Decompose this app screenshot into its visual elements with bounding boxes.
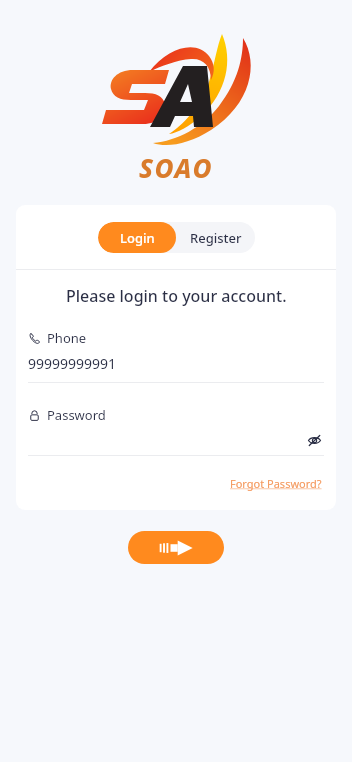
staticText: Please login to your account. — [66, 285, 287, 307]
button[interactable]: Login — [98, 222, 176, 253]
staticText: Register — [190, 229, 242, 247]
button[interactable]: Forgot Password? — [228, 474, 324, 493]
staticText: Login — [120, 229, 155, 247]
staticText: 99999999991 — [28, 354, 117, 373]
staticText: Password — [47, 406, 106, 424]
staticText: SOAO — [139, 150, 214, 185]
button[interactable]: Register — [176, 222, 255, 253]
button[interactable]: Show password — [304, 430, 324, 450]
staticText: Phone — [47, 329, 87, 347]
button[interactable]: Submit — [128, 531, 224, 564]
staticText: Forgot Password? — [230, 476, 322, 491]
